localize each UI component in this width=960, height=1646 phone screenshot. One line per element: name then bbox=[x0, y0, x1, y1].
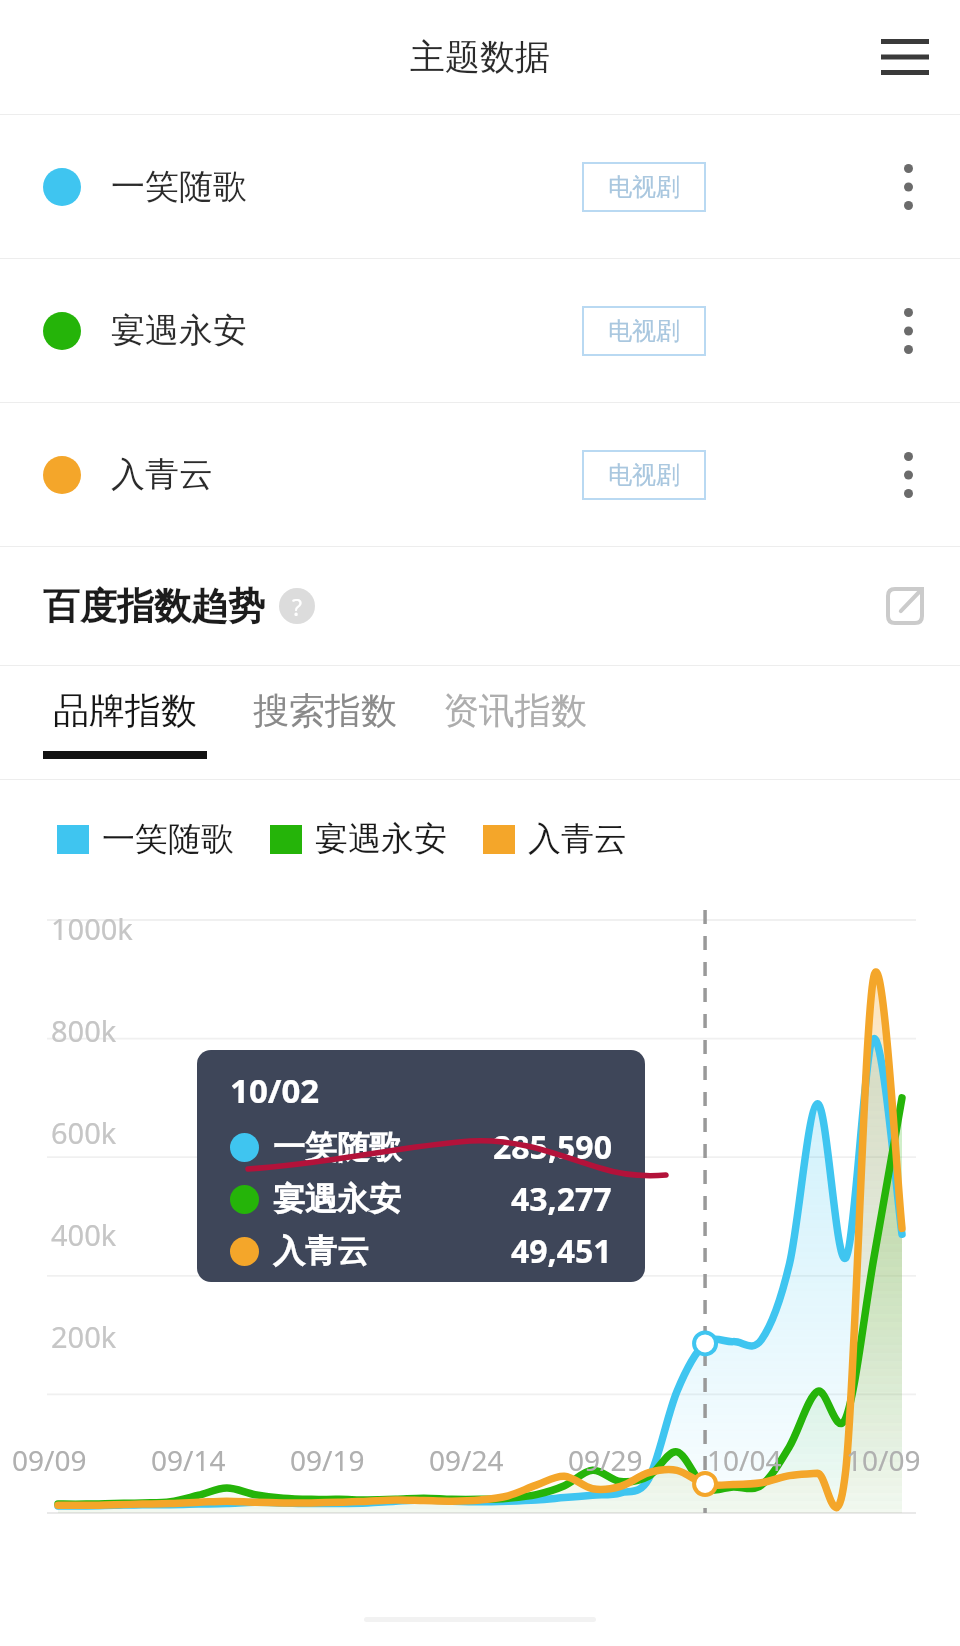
staticText: 品牌指数 bbox=[53, 688, 197, 733]
staticText: 搜索指数 bbox=[253, 688, 397, 733]
staticText: ? bbox=[292, 591, 302, 622]
staticText: 一笑随歌 bbox=[102, 818, 234, 860]
staticText: 10/09 bbox=[846, 1441, 921, 1479]
staticText: 入青云 bbox=[111, 453, 213, 496]
staticText: 电视剧 bbox=[608, 460, 680, 490]
staticText: 09/19 bbox=[290, 1441, 365, 1479]
button[interactable]: 搜索指数 bbox=[253, 688, 397, 733]
button[interactable]: 宴遇永安 bbox=[270, 818, 447, 860]
staticText: 入青云 bbox=[528, 818, 627, 860]
staticText: 宴遇永安 bbox=[273, 1179, 401, 1219]
staticText: 10/02 bbox=[230, 1068, 320, 1113]
button[interactable]: 品牌指数 bbox=[43, 666, 207, 759]
staticText: 49,451 bbox=[511, 1229, 612, 1273]
button[interactable]: 一笑随歌 bbox=[57, 818, 234, 860]
staticText: 电视剧 bbox=[608, 172, 680, 202]
staticText: 600k bbox=[51, 1113, 117, 1152]
button[interactable]: 一笑随歌 bbox=[0, 115, 960, 258]
staticText: 43,277 bbox=[511, 1177, 612, 1221]
button[interactable]: 电视剧 bbox=[582, 306, 706, 356]
button[interactable]: Open in new window bbox=[870, 571, 940, 641]
button[interactable]: Help bbox=[279, 588, 315, 624]
staticText: 10/04 bbox=[707, 1441, 782, 1479]
button[interactable]: Menu bbox=[870, 22, 940, 92]
staticText: 一笑随歌 bbox=[273, 1127, 401, 1167]
staticText: 09/09 bbox=[12, 1441, 87, 1479]
button[interactable]: More options bbox=[878, 445, 938, 505]
button[interactable]: 电视剧 bbox=[582, 162, 706, 212]
button[interactable]: 入青云 bbox=[483, 818, 627, 860]
staticText: 宴遇永安 bbox=[111, 309, 247, 352]
staticText: 主题数据 bbox=[410, 35, 550, 79]
staticText: 电视剧 bbox=[608, 316, 680, 346]
staticText: 宴遇永安 bbox=[315, 818, 447, 860]
staticText: 400k bbox=[51, 1215, 117, 1254]
button[interactable]: More options bbox=[878, 157, 938, 217]
staticText: 资讯指数 bbox=[443, 688, 587, 733]
staticText: 285,590 bbox=[493, 1125, 612, 1169]
staticText: 09/29 bbox=[568, 1441, 643, 1479]
button[interactable]: 电视剧 bbox=[582, 450, 706, 500]
staticText: 1000k bbox=[51, 909, 133, 948]
staticText: 200k bbox=[51, 1317, 117, 1356]
staticText: 入青云 bbox=[273, 1231, 369, 1271]
button[interactable]: More options bbox=[878, 301, 938, 361]
staticText: 09/24 bbox=[429, 1441, 504, 1479]
staticText: 800k bbox=[51, 1011, 117, 1050]
staticText: 百度指数趋势 bbox=[43, 583, 265, 630]
button[interactable]: 入青云 bbox=[0, 403, 960, 546]
button[interactable]: 宴遇永安 bbox=[0, 259, 960, 402]
staticText: 09/14 bbox=[151, 1441, 226, 1479]
staticText: 一笑随歌 bbox=[111, 165, 247, 208]
button[interactable]: 资讯指数 bbox=[443, 688, 587, 733]
